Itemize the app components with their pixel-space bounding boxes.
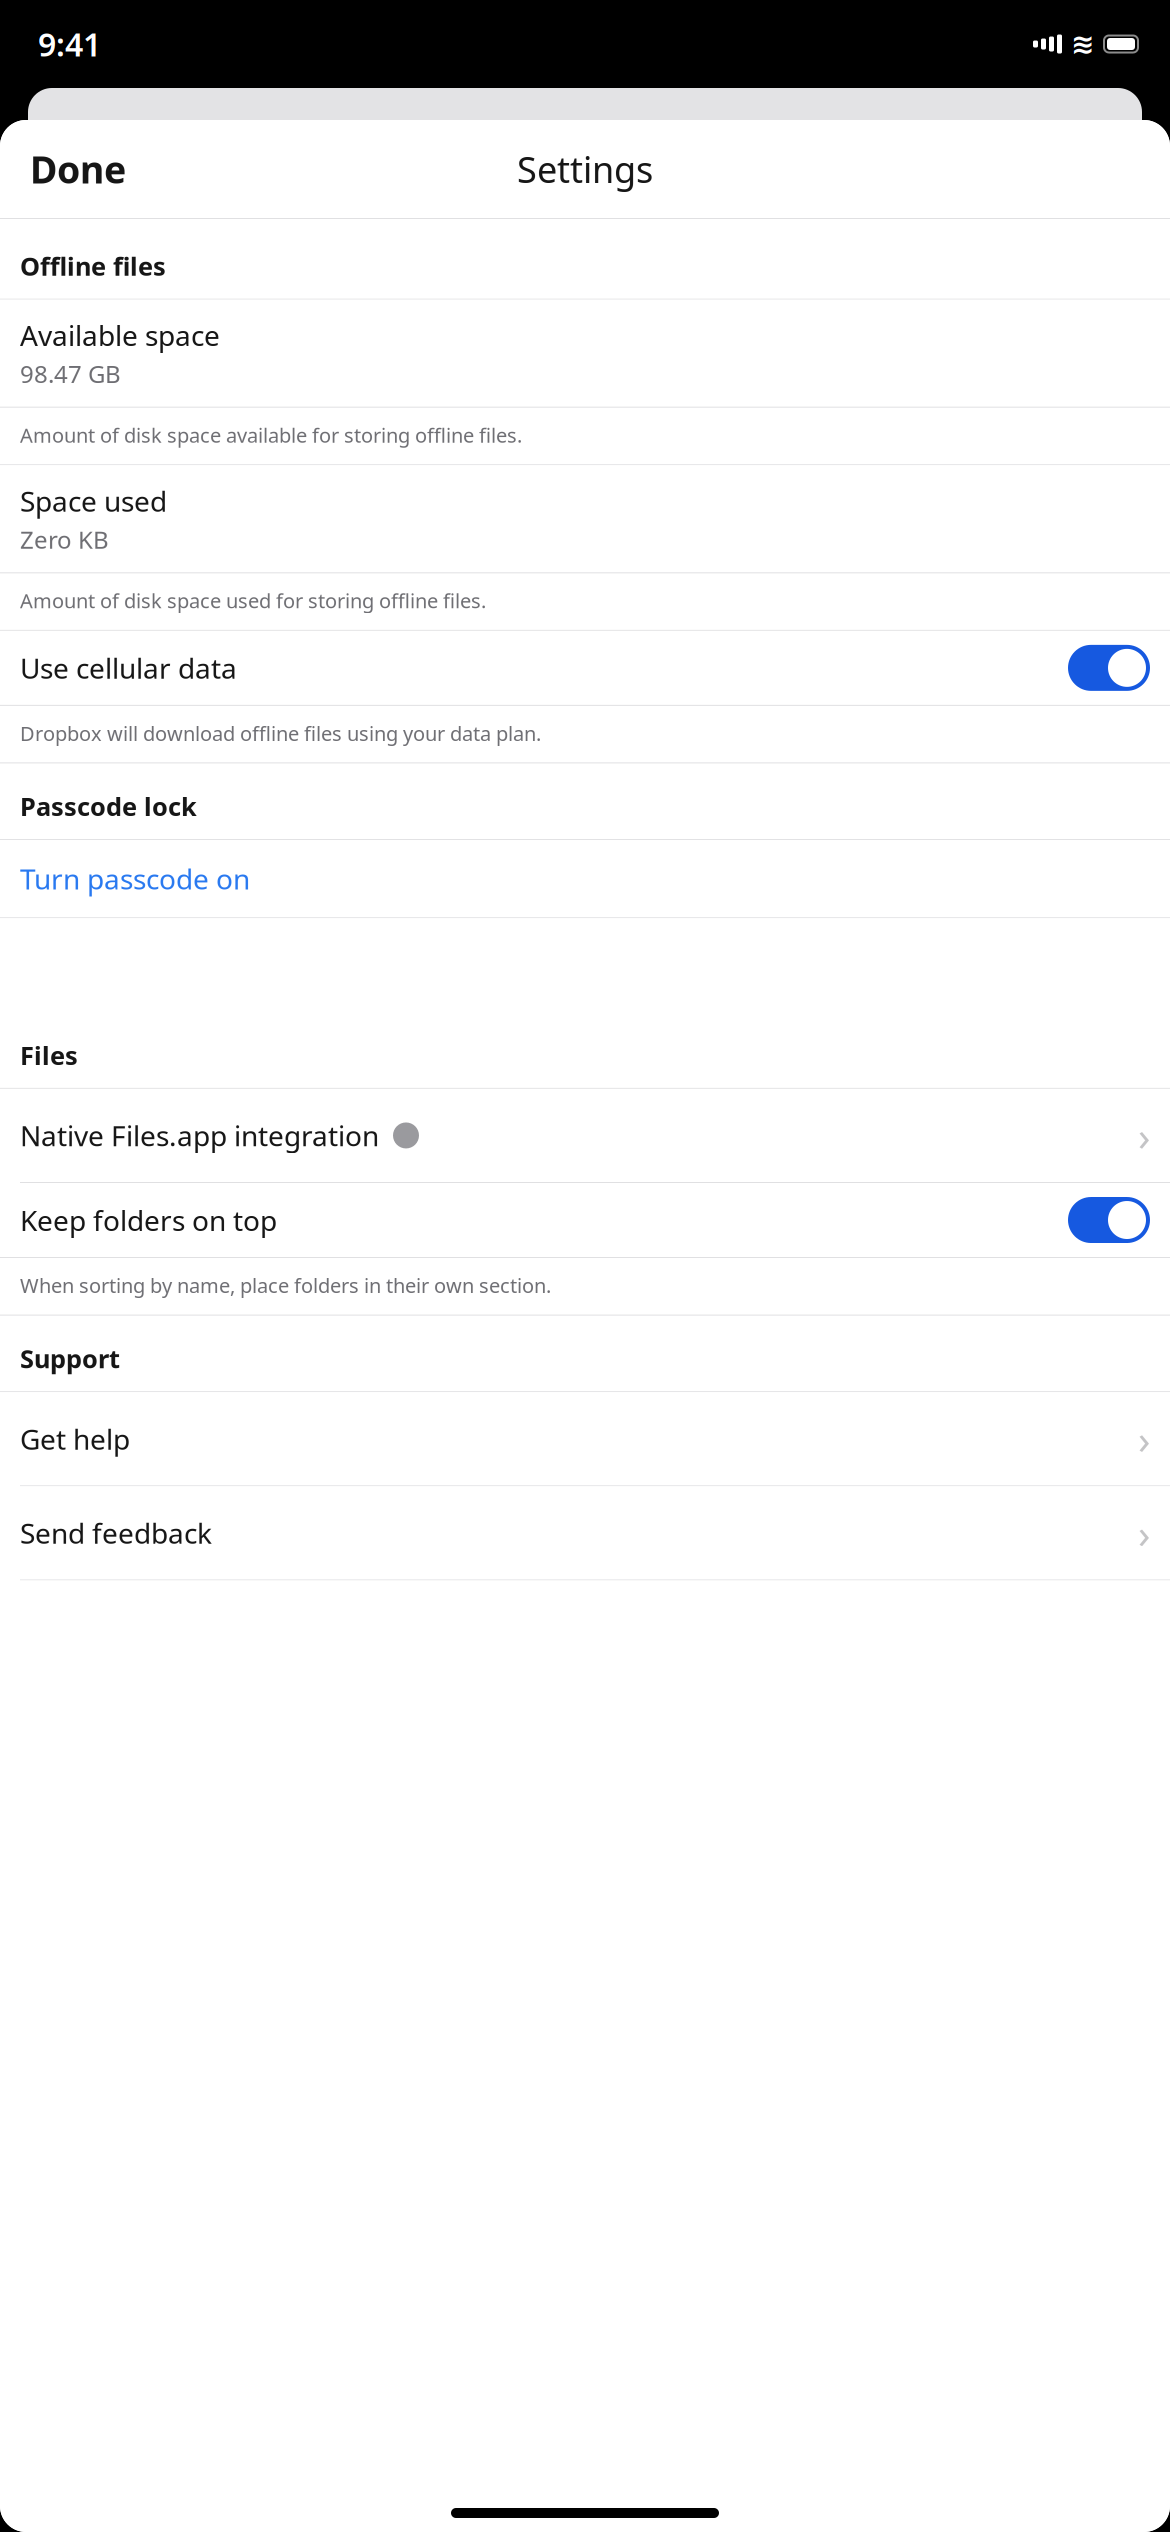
staticText: Files bbox=[20, 1038, 78, 1072]
button[interactable]: Use cellular data bbox=[0, 631, 1170, 705]
button[interactable]: Available space bbox=[0, 300, 1170, 407]
staticText: Keep folders on top bbox=[20, 1201, 277, 1239]
staticText: Dropbox will download offline files usin… bbox=[20, 720, 541, 746]
staticText: Native Files.app integration bbox=[20, 1117, 379, 1154]
staticText: Amount of disk space available for stori… bbox=[20, 422, 522, 448]
staticText: Send feedback bbox=[20, 1514, 212, 1551]
staticText: Available space bbox=[20, 317, 220, 354]
staticText: Passcode lock bbox=[20, 789, 197, 823]
staticText: Done bbox=[30, 144, 126, 194]
staticText: Amount of disk space used for storing of… bbox=[20, 587, 486, 614]
button[interactable]: Send feedback bbox=[0, 1486, 1170, 1579]
staticText: › bbox=[1138, 1506, 1150, 1559]
button[interactable]: Space used bbox=[0, 465, 1170, 572]
staticText: ≋ bbox=[1071, 28, 1094, 60]
button[interactable]: Turn passcode on bbox=[0, 840, 1170, 917]
button[interactable]: Keep folders on top bbox=[0, 1183, 1170, 1257]
staticText: Support bbox=[20, 1342, 120, 1375]
button[interactable]: Get help bbox=[0, 1392, 1170, 1485]
staticText: Use cellular data bbox=[20, 649, 237, 686]
staticText: › bbox=[1138, 1412, 1150, 1465]
staticText: 9:41 bbox=[38, 23, 101, 65]
staticText: Get help bbox=[20, 1420, 130, 1457]
staticText: Settings bbox=[517, 145, 653, 193]
staticText: 98.47 GB bbox=[20, 358, 121, 390]
staticText: › bbox=[1138, 1109, 1150, 1162]
staticText: When sorting by name, place folders in t… bbox=[20, 1272, 551, 1299]
staticText: Offline files bbox=[20, 249, 166, 283]
staticText: Turn passcode on bbox=[20, 860, 250, 897]
button[interactable]: Native Files.app integration bbox=[0, 1089, 1170, 1182]
staticText: Space used bbox=[20, 482, 167, 519]
button[interactable]: Done bbox=[10, 132, 146, 206]
staticText: Zero KB bbox=[20, 523, 109, 555]
